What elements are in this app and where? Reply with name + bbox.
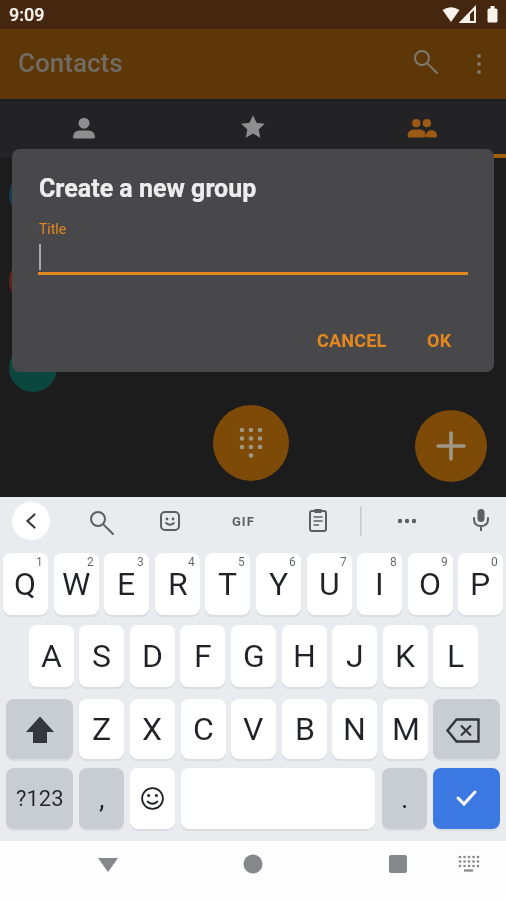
- staticText: Create a new group: [39, 174, 257, 203]
- button[interactable]: M: [383, 699, 428, 759]
- button[interactable]: L: [433, 625, 478, 687]
- staticText: 0: [491, 555, 498, 569]
- staticText: L: [447, 637, 465, 675]
- staticText: C: [193, 710, 214, 748]
- staticText: I: [375, 565, 384, 603]
- staticText: 4: [188, 555, 195, 569]
- staticText: J: [346, 637, 364, 675]
- staticText: 3: [137, 555, 144, 569]
- button[interactable]: [433, 699, 500, 759]
- button[interactable]: W: [54, 553, 99, 615]
- staticText: S: [92, 637, 111, 675]
- staticText: O: [419, 565, 442, 603]
- staticText: 9:09: [9, 4, 45, 25]
- button[interactable]: [337, 99, 506, 158]
- button[interactable]: H: [282, 625, 327, 687]
- button[interactable]: S: [79, 625, 124, 687]
- button[interactable]: G: [231, 625, 276, 687]
- staticText: 7: [340, 555, 347, 569]
- button[interactable]: ,: [79, 768, 124, 829]
- staticText: Contacts: [18, 48, 123, 78]
- staticText: P: [470, 565, 491, 603]
- button[interactable]: J: [332, 625, 377, 687]
- button[interactable]: [415, 410, 487, 482]
- button[interactable]: V: [231, 699, 276, 759]
- button[interactable]: .: [382, 768, 427, 829]
- button[interactable]: Z: [79, 699, 124, 759]
- staticText: T: [218, 565, 238, 603]
- button[interactable]: [223, 834, 283, 894]
- staticText: V: [243, 710, 264, 748]
- staticText: H: [293, 637, 316, 675]
- button[interactable]: X: [130, 699, 175, 759]
- button[interactable]: B: [282, 699, 327, 759]
- staticText: ,: [99, 782, 105, 815]
- staticText: OK: [427, 330, 452, 351]
- staticText: E: [117, 565, 136, 603]
- button[interactable]: P: [458, 553, 503, 615]
- staticText: K: [395, 637, 416, 675]
- button[interactable]: CANCEL: [307, 319, 397, 361]
- button[interactable]: F: [180, 625, 225, 687]
- staticText: A: [41, 637, 62, 675]
- staticText: M: [392, 710, 420, 748]
- button[interactable]: [80, 501, 120, 541]
- staticText: W: [62, 565, 91, 603]
- button[interactable]: [433, 768, 500, 829]
- button[interactable]: [387, 501, 427, 541]
- button[interactable]: [368, 834, 428, 894]
- button[interactable]: [298, 501, 338, 541]
- staticText: CANCEL: [317, 330, 387, 351]
- staticText: 9: [441, 555, 448, 569]
- staticText: X: [142, 710, 163, 748]
- button[interactable]: OK: [410, 319, 468, 361]
- button[interactable]: [169, 99, 338, 158]
- staticText: ?123: [16, 786, 64, 812]
- button[interactable]: ?123: [6, 768, 73, 829]
- staticText: D: [142, 637, 163, 675]
- button[interactable]: [150, 501, 190, 541]
- button[interactable]: Y: [256, 553, 301, 615]
- button[interactable]: O: [408, 553, 453, 615]
- button[interactable]: [448, 842, 492, 886]
- staticText: 5: [238, 555, 245, 569]
- button[interactable]: K: [383, 625, 428, 687]
- staticText: Y: [269, 565, 289, 603]
- button[interactable]: [460, 43, 500, 83]
- button[interactable]: T: [205, 553, 250, 615]
- button[interactable]: D: [130, 625, 175, 687]
- staticText: .: [401, 782, 409, 815]
- staticText: Title: [39, 221, 67, 237]
- staticText: N: [343, 710, 366, 748]
- button[interactable]: [12, 502, 50, 540]
- staticText: R: [168, 565, 188, 603]
- button[interactable]: [213, 405, 289, 481]
- staticText: G: [243, 637, 265, 675]
- staticText: 1: [36, 555, 43, 569]
- button[interactable]: R: [155, 553, 200, 615]
- staticText: Z: [92, 710, 112, 748]
- button[interactable]: N: [332, 699, 377, 759]
- button[interactable]: [6, 699, 73, 759]
- button[interactable]: E: [104, 553, 149, 615]
- staticText: U: [319, 565, 340, 603]
- button[interactable]: Q: [3, 553, 48, 615]
- button[interactable]: [404, 40, 444, 80]
- staticText: F: [194, 637, 212, 675]
- staticText: Q: [14, 565, 37, 603]
- button[interactable]: A: [29, 625, 74, 687]
- button[interactable]: I: [357, 553, 402, 615]
- staticText: 6: [289, 555, 296, 569]
- staticText: GIF: [232, 514, 255, 529]
- button[interactable]: [78, 834, 138, 894]
- staticText: B: [295, 710, 315, 748]
- staticText: 2: [87, 555, 94, 569]
- staticText: 8: [390, 555, 397, 569]
- button[interactable]: [130, 768, 175, 829]
- button[interactable]: [0, 99, 169, 158]
- button[interactable]: [461, 501, 501, 541]
- button[interactable]: U: [307, 553, 352, 615]
- button[interactable]: C: [181, 699, 226, 759]
- button[interactable]: GIF: [223, 501, 263, 541]
